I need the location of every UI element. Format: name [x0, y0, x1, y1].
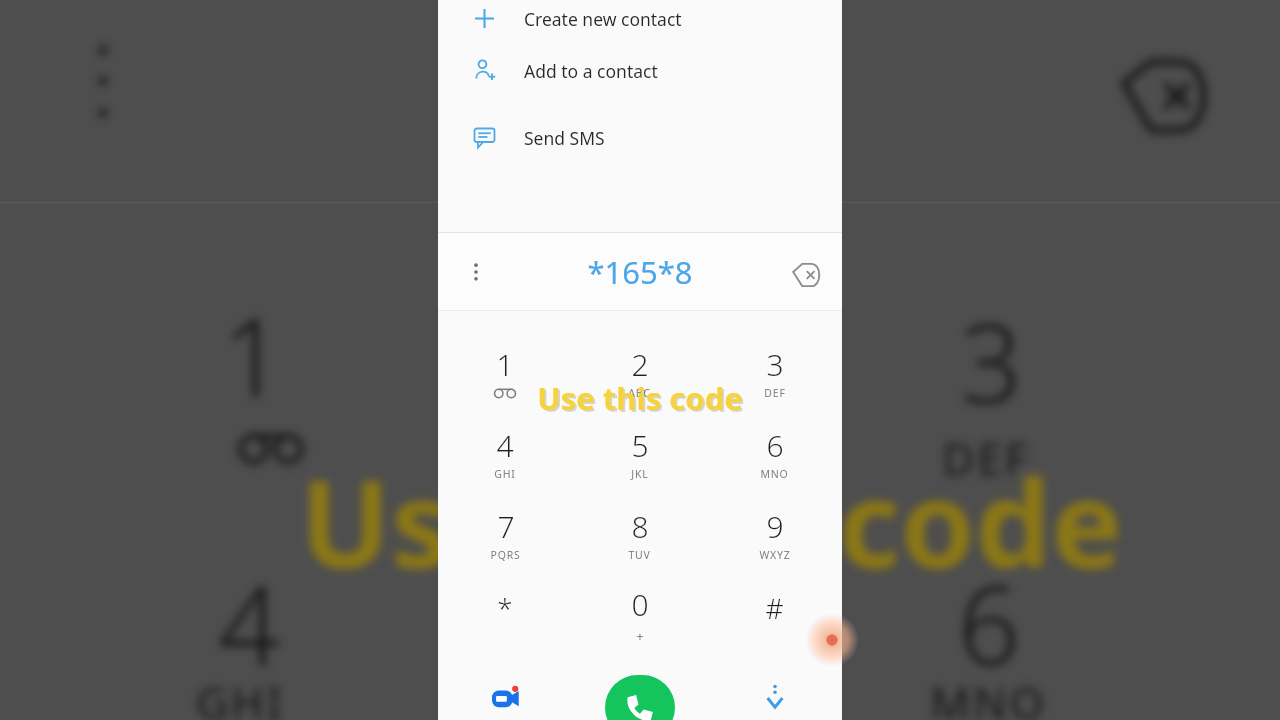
staticText: 7: [497, 506, 515, 547]
button[interactable]: 9: [707, 493, 842, 574]
button[interactable]: 6: [707, 412, 842, 493]
staticText: 0: [631, 584, 649, 625]
staticText: 2: [631, 344, 649, 385]
staticText: 1: [496, 344, 514, 385]
button[interactable]: 0: [572, 574, 707, 655]
staticText: Create new contact: [524, 7, 682, 31]
staticText: +: [636, 627, 644, 645]
staticText: 1: [222, 282, 284, 429]
staticText: *: [497, 589, 513, 627]
button[interactable]: Call: [605, 675, 675, 720]
staticText: 9: [766, 506, 784, 547]
button[interactable]: 3: [707, 331, 842, 412]
staticText: Send SMS: [524, 126, 605, 150]
staticText: TUV: [628, 548, 651, 562]
staticText: 5: [631, 425, 649, 466]
staticText: PQRS: [490, 548, 521, 562]
staticText: code: [838, 440, 1123, 603]
staticText: 4: [218, 550, 280, 697]
staticText: MNO: [930, 672, 1047, 720]
button[interactable]: Video call: [482, 674, 528, 720]
button[interactable]: Backspace: [784, 249, 830, 295]
button[interactable]: 5: [572, 412, 707, 493]
button[interactable]: Send SMS: [438, 104, 842, 171]
button[interactable]: Hide keypad: [752, 674, 798, 720]
staticText: ABC: [628, 386, 651, 400]
staticText: Us: [300, 440, 451, 603]
button[interactable]: 8: [572, 493, 707, 574]
staticText: 6: [958, 550, 1020, 697]
staticText: 3: [766, 344, 784, 385]
staticText: 3: [960, 288, 1022, 435]
staticText: 4: [496, 425, 514, 466]
staticText: Use this code: [539, 379, 745, 421]
button[interactable]: Create new contact: [438, 0, 842, 37]
staticText: DEF: [764, 386, 786, 400]
staticText: Add to a contact: [524, 59, 658, 83]
button[interactable]: 1: [438, 331, 572, 412]
button[interactable]: #: [707, 574, 842, 655]
staticText: MNO: [760, 467, 789, 481]
button[interactable]: More options: [456, 252, 496, 292]
staticText: JKL: [631, 467, 649, 481]
staticText: #: [765, 589, 784, 627]
staticText: GHI: [196, 672, 285, 720]
button[interactable]: *: [438, 574, 572, 655]
staticText: 8: [631, 506, 649, 547]
button[interactable]: 4: [438, 412, 572, 493]
staticText: GHI: [494, 467, 516, 481]
staticText: WXYZ: [759, 548, 791, 562]
button[interactable]: 2: [572, 331, 707, 412]
button[interactable]: Add to a contact: [438, 37, 842, 104]
staticText: Use this code: [537, 377, 743, 419]
staticText: 6: [766, 425, 784, 466]
staticText: *165*8: [587, 251, 693, 293]
button[interactable]: 7: [438, 493, 572, 574]
staticText: DEF: [942, 428, 1031, 488]
